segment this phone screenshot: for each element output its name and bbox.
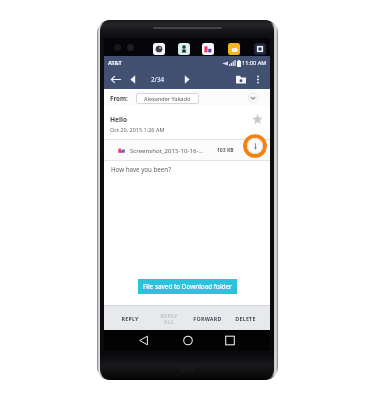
staticText: Hello (110, 115, 128, 124)
staticText: How have you been? (111, 165, 171, 173)
button[interactable]: REPLY ALL (153, 306, 185, 330)
button[interactable]: Gallery (202, 43, 214, 55)
button[interactable]: FORWARD (188, 306, 226, 330)
button[interactable]: Back (108, 70, 124, 89)
staticText: 2/34 (151, 75, 165, 84)
button[interactable]: Download attachment (247, 138, 263, 154)
button[interactable]: Apps (254, 43, 266, 55)
staticText: LG (179, 359, 195, 375)
button[interactable]: Home (177, 330, 199, 351)
button[interactable]: Notes (228, 43, 240, 55)
button[interactable]: Camera (153, 43, 165, 55)
staticText: File saved to Download folder (143, 282, 232, 291)
button[interactable]: Next (179, 70, 195, 89)
button[interactable]: Star (250, 112, 264, 126)
staticText: 103 KB (217, 147, 234, 154)
button[interactable]: Alexander Yakacki (136, 93, 199, 104)
staticText: AT&T (108, 59, 122, 67)
button[interactable]: Previous (125, 70, 141, 89)
staticText: DELETE (235, 315, 256, 322)
button[interactable]: Recent apps (219, 330, 241, 351)
staticText: FORWARD (193, 315, 222, 322)
staticText: 11:00 AM (242, 59, 267, 67)
button[interactable]: REPLY (114, 306, 146, 330)
button[interactable]: Back (133, 330, 155, 351)
button[interactable]: More options (251, 70, 265, 89)
button[interactable]: Move to folder (232, 70, 250, 89)
staticText: Oct 20, 2015 1:26 AM (110, 126, 165, 133)
staticText: From: (110, 94, 128, 102)
staticText: REPLY (121, 315, 139, 322)
staticText: Screenshot_2015-10-16-... (130, 146, 204, 154)
button[interactable]: DELETE (228, 306, 262, 330)
button[interactable]: File saved to Download folder (138, 279, 237, 294)
button[interactable]: Expand details (246, 90, 260, 106)
staticText: Alexander Yakacki (144, 95, 191, 102)
staticText: REPLY ALL (160, 312, 178, 325)
button[interactable]: Contacts (178, 43, 190, 55)
